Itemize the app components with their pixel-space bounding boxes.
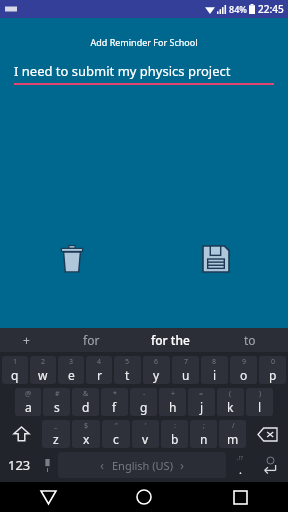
staticText: -: [143, 389, 146, 399]
staticText: ": [115, 421, 118, 431]
staticText: :: [174, 421, 176, 431]
button[interactable]: Save: [144, 235, 288, 283]
staticText: ›: [180, 456, 185, 474]
staticText: .: [239, 462, 242, 477]
button[interactable]: $: [72, 420, 100, 448]
button[interactable]: Recents: [192, 482, 288, 512]
staticText: 4: [97, 357, 102, 367]
button[interactable]: Backspace: [247, 418, 287, 450]
button[interactable]: 3: [58, 356, 84, 384]
button[interactable]: 6: [143, 356, 170, 384]
staticText: (: [229, 389, 232, 399]
staticText: I need to submit my physics project: [14, 62, 231, 80]
staticText: o: [240, 367, 248, 383]
staticText: for: [83, 332, 100, 348]
button[interactable]: Shift: [1, 418, 41, 450]
staticText: for the: [151, 332, 190, 348]
button[interactable]: _: [42, 420, 70, 448]
button[interactable]: Voice input: [36, 450, 58, 480]
button[interactable]: ": [102, 420, 130, 448]
button[interactable]: @: [15, 388, 41, 416]
staticText: 22:45: [258, 2, 284, 16]
button[interactable]: :: [161, 420, 188, 448]
staticText: English (US): [112, 458, 173, 473]
staticText: b: [171, 431, 179, 447]
button[interactable]: Home: [96, 482, 192, 512]
staticText: $: [84, 421, 89, 431]
button[interactable]: ': [132, 420, 159, 448]
staticText: ': [145, 421, 147, 431]
staticText: *: [113, 389, 117, 399]
staticText: 3: [69, 357, 74, 367]
staticText: Add Reminder For School: [0, 36, 288, 48]
button[interactable]: +: [159, 388, 186, 416]
button[interactable]: ‹: [58, 452, 226, 478]
button[interactable]: 8: [201, 356, 228, 384]
staticText: y: [153, 367, 160, 383]
button[interactable]: 7: [172, 356, 199, 384]
staticText: 0: [271, 357, 276, 367]
button[interactable]: ;: [190, 420, 217, 448]
staticText: @: [25, 389, 32, 399]
button[interactable]: 4: [86, 356, 112, 384]
button[interactable]: *: [101, 388, 128, 416]
staticText: 9: [242, 357, 247, 367]
button[interactable]: Delete: [0, 235, 144, 283]
staticText: u: [182, 367, 190, 383]
staticText: c: [113, 431, 119, 447]
staticText: d: [82, 399, 90, 415]
staticText: i: [213, 367, 217, 383]
staticText: to: [244, 332, 256, 348]
button[interactable]: for: [53, 328, 129, 352]
button[interactable]: 1: [2, 356, 28, 384]
staticText: s: [54, 399, 60, 415]
button[interactable]: ): [246, 388, 273, 416]
staticText: r: [97, 367, 102, 383]
staticText: l: [258, 399, 262, 415]
staticText: #: [55, 389, 60, 399]
staticText: /: [232, 421, 235, 431]
staticText: g: [140, 399, 148, 415]
button[interactable]: 2: [30, 356, 56, 384]
button[interactable]: ,!?: [226, 450, 254, 480]
staticText: h: [169, 399, 177, 415]
staticText: z: [53, 431, 59, 447]
staticText: ;: [203, 421, 205, 431]
staticText: 123: [8, 456, 31, 474]
staticText: f: [112, 399, 117, 415]
staticText: t: [125, 367, 130, 383]
button[interactable]: =: [188, 388, 215, 416]
staticText: 8: [212, 357, 217, 367]
button[interactable]: +: [0, 328, 53, 352]
staticText: w: [38, 367, 48, 383]
button[interactable]: 9: [230, 356, 257, 384]
button[interactable]: /: [219, 420, 246, 448]
button[interactable]: Back: [0, 482, 96, 512]
staticText: 84%: [229, 3, 247, 15]
staticText: ): [259, 389, 262, 399]
staticText: k: [227, 399, 234, 415]
staticText: 1: [13, 357, 18, 367]
staticText: 2: [41, 357, 46, 367]
staticText: x: [83, 431, 90, 447]
staticText: e: [68, 367, 75, 383]
button[interactable]: -: [130, 388, 157, 416]
button[interactable]: 123: [2, 450, 36, 480]
button[interactable]: (: [217, 388, 244, 416]
button[interactable]: 0: [259, 356, 286, 384]
button[interactable]: #: [43, 388, 70, 416]
button[interactable]: &: [72, 388, 99, 416]
staticText: &: [83, 389, 89, 399]
staticText: n: [200, 431, 208, 447]
button[interactable]: to: [212, 328, 288, 352]
staticText: _: [54, 421, 58, 431]
staticText: p: [269, 367, 277, 383]
button[interactable]: 5: [114, 356, 141, 384]
button[interactable]: Enter: [254, 450, 286, 480]
staticText: +: [171, 389, 176, 399]
staticText: m: [227, 431, 239, 447]
staticText: a: [25, 399, 32, 415]
button[interactable]: for the: [129, 328, 212, 352]
staticText: 7: [184, 357, 189, 367]
staticText: ,!?: [237, 454, 243, 462]
